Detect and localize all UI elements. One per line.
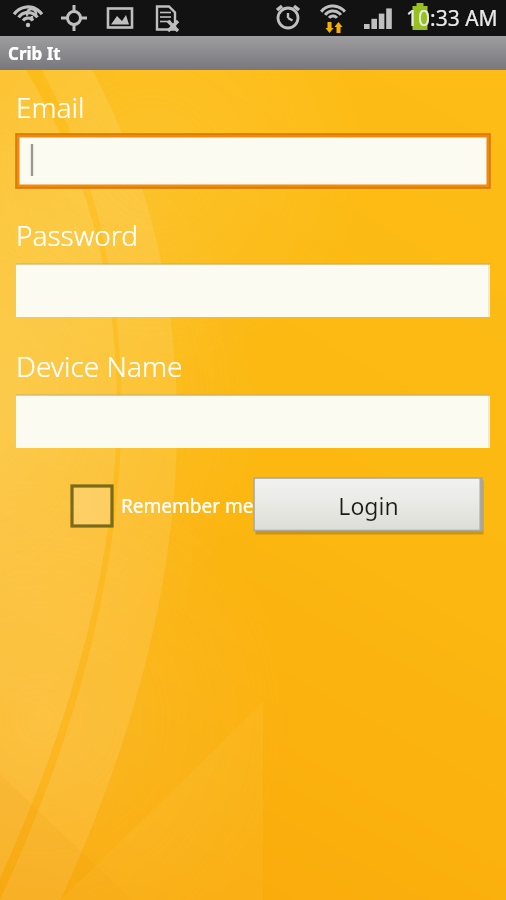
button[interactable]	[16, 263, 490, 317]
staticText: Email	[16, 88, 85, 126]
staticText: Remember me	[121, 493, 254, 519]
staticText: Device Name	[16, 347, 183, 385]
staticText: Crib It	[8, 42, 61, 65]
staticText: Login	[338, 490, 399, 521]
button[interactable]: Remember me	[72, 486, 254, 526]
button[interactable]	[16, 134, 490, 188]
button[interactable]	[16, 394, 490, 448]
staticText: Password	[16, 216, 139, 254]
staticText: 10:33 AM	[406, 4, 498, 33]
button[interactable]: Login	[254, 478, 482, 533]
